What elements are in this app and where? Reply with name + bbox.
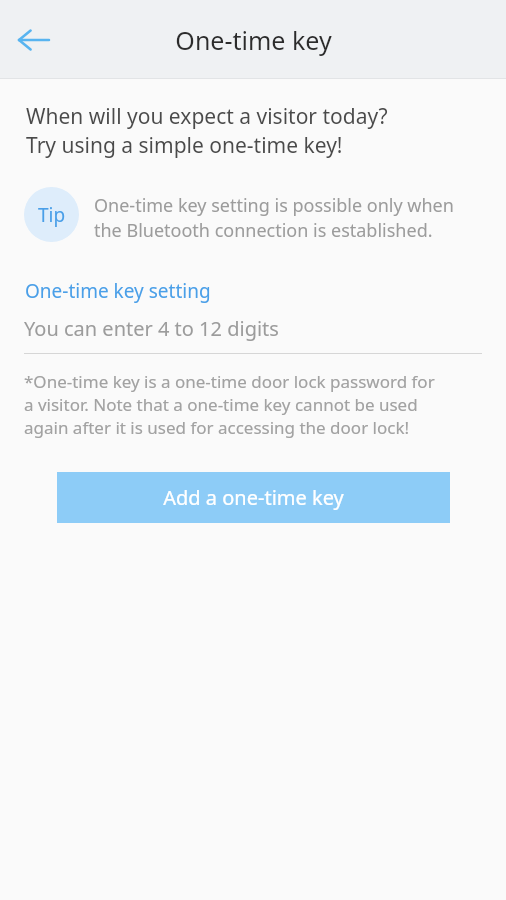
staticText: a visitor. Note that a one-time key cann… (24, 393, 418, 416)
staticText: One-time key setting (25, 278, 211, 304)
staticText: Add a one-time key (163, 484, 344, 511)
staticText: the Bluetooth connection is established. (94, 218, 433, 243)
button[interactable]: You can enter 4 to 12 digits (24, 315, 482, 354)
staticText: *One-time key is a one-time door lock pa… (24, 370, 435, 393)
staticText: When will you expect a visitor today? (26, 102, 388, 131)
staticText: again after it is used for accessing the… (24, 416, 410, 439)
staticText: You can enter 4 to 12 digits (24, 315, 279, 342)
staticText: Try using a simple one-time key! (26, 131, 343, 160)
staticText: One-time key setting is possible only wh… (94, 193, 454, 218)
staticText: Tip (38, 202, 66, 228)
button[interactable]: Back (6, 12, 62, 68)
button[interactable]: Add a one-time key (57, 472, 450, 523)
staticText: One-time key (175, 23, 332, 57)
